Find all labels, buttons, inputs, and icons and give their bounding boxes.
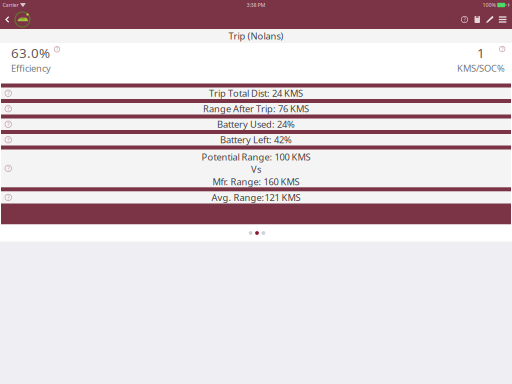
staticText: 63.0%	[11, 44, 50, 62]
staticText: Battery Left: 42%	[220, 134, 292, 146]
button[interactable]: Battery Used: 24%	[1, 118, 511, 130]
button[interactable]: Potential Range: 100 KMS	[1, 149, 511, 187]
button[interactable]: Trip Total Dist: 24 KMS	[1, 87, 511, 99]
staticText: Vs	[251, 163, 261, 175]
staticText: Avg. Range:121 KMS	[211, 191, 300, 204]
staticText: Battery Used: 24%	[217, 118, 295, 130]
button[interactable]: Back	[1, 10, 12, 29]
staticText: ?	[7, 165, 9, 172]
button[interactable]: Battery Left: 42%	[1, 134, 511, 145]
button[interactable]: Menu	[496, 10, 509, 29]
button[interactable]: Avg. Range:121 KMS	[1, 191, 511, 203]
staticText: 1	[477, 44, 485, 62]
staticText: ?	[7, 194, 9, 201]
staticText: Potential Range: 100 KMS	[201, 151, 310, 163]
staticText: Trip (Nolans)	[228, 30, 283, 42]
button[interactable]: Edit	[484, 10, 496, 29]
button[interactable]: Help	[458, 10, 471, 29]
staticText: Carrier	[2, 1, 18, 9]
staticText: Range After Trip: 76 KMS	[203, 103, 309, 115]
staticText: ?	[7, 121, 9, 128]
staticText: 3:38 PM	[246, 1, 265, 9]
staticText: ?	[501, 45, 503, 53]
button[interactable]: Notes	[471, 10, 484, 29]
staticText: ?	[56, 46, 58, 53]
staticText: Trip Total Dist: 24 KMS	[209, 87, 303, 99]
staticText: ?	[7, 90, 9, 97]
staticText: KMS/SOC%	[457, 62, 505, 74]
staticText: ?	[7, 105, 9, 112]
staticText: Mfr. Range: 160 KMS	[212, 175, 299, 188]
button[interactable]: Home	[12, 10, 32, 29]
button[interactable]: Range After Trip: 76 KMS	[1, 103, 511, 114]
staticText: Efficiency	[11, 62, 51, 74]
staticText: ?	[7, 136, 9, 143]
staticText: ?	[464, 16, 466, 23]
staticText: 100%	[483, 1, 496, 9]
